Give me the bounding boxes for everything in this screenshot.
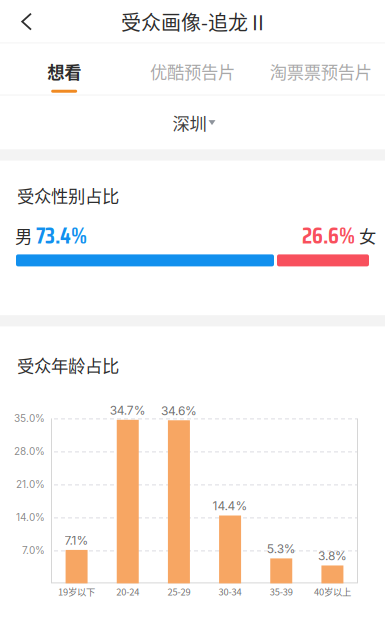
staticText: 5.3% bbox=[267, 542, 296, 556]
staticText: 女 bbox=[355, 223, 376, 248]
staticText: 28.0% bbox=[14, 445, 45, 457]
staticText: 7.1% bbox=[65, 533, 89, 548]
button[interactable]: 优酷预告片 bbox=[128, 44, 257, 96]
button[interactable]: 深圳 bbox=[158, 101, 226, 144]
staticText: 35.0% bbox=[14, 412, 45, 424]
button[interactable]: 淘票票预告片 bbox=[257, 44, 385, 96]
staticText: 14.4% bbox=[213, 499, 248, 513]
staticText: 受众年龄占比 bbox=[17, 352, 119, 377]
staticText: 受众画像-追龙 II bbox=[121, 7, 264, 36]
staticText: 男 bbox=[15, 223, 32, 248]
button[interactable]: Back bbox=[0, 0, 50, 44]
staticText: 30-34 bbox=[219, 585, 242, 598]
staticText: 26.6% bbox=[302, 218, 355, 253]
staticText: 20-24 bbox=[116, 585, 139, 598]
staticText: 3.8% bbox=[318, 549, 347, 563]
staticText: 34.7% bbox=[110, 403, 146, 417]
staticText: 34.6% bbox=[161, 403, 197, 418]
staticText: 21.0% bbox=[16, 478, 45, 490]
staticText: 19岁以下 bbox=[58, 585, 95, 598]
staticText: 7.0% bbox=[22, 544, 45, 556]
staticText: 优酷预告片 bbox=[150, 59, 235, 84]
staticText: 深圳 bbox=[172, 110, 206, 135]
staticText: 73.4% bbox=[32, 218, 87, 253]
staticText: 淘票票预告片 bbox=[270, 59, 372, 84]
staticText: 受众性别占比 bbox=[17, 183, 119, 208]
staticText: 14.0% bbox=[16, 511, 45, 523]
staticText: 40岁以上 bbox=[314, 585, 351, 598]
staticText: 35-39 bbox=[270, 585, 293, 598]
staticText: 想看 bbox=[47, 59, 81, 84]
staticText: 25-29 bbox=[167, 585, 190, 598]
button[interactable]: 想看 bbox=[0, 44, 128, 96]
